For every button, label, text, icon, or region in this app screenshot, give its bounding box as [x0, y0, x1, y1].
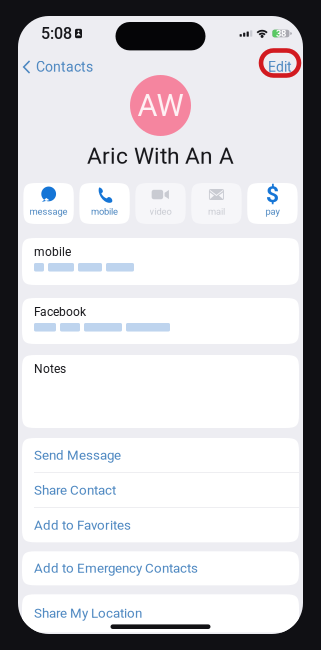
button[interactable]: Share Contact	[22, 473, 299, 507]
staticText: video	[149, 206, 171, 217]
staticText: 5:08	[41, 24, 72, 43]
button[interactable]: mobile	[22, 238, 299, 285]
staticText: Send Message	[34, 447, 121, 463]
button[interactable]: video	[135, 183, 186, 224]
staticText: Notes	[34, 362, 66, 376]
staticText: Aric With An A	[87, 143, 234, 169]
staticText: pay	[265, 206, 279, 217]
staticText: Edit	[268, 59, 292, 75]
staticText: mobile	[34, 245, 71, 259]
staticText: Share My Location	[34, 605, 142, 621]
button[interactable]: $	[247, 183, 298, 224]
button[interactable]: Facebook	[22, 298, 299, 344]
staticText: Add to Emergency Contacts	[34, 560, 198, 576]
staticText: $	[266, 181, 279, 208]
staticText: AW	[137, 87, 183, 123]
button[interactable]: message	[23, 183, 74, 224]
button[interactable]: mail	[191, 183, 242, 224]
button[interactable]: Share My Location	[22, 594, 299, 632]
button[interactable]: Add to Emergency Contacts	[22, 551, 299, 585]
button[interactable]: Edit	[261, 50, 299, 75]
button[interactable]: Contacts	[22, 50, 93, 76]
staticText: Add to Favorites	[34, 517, 131, 533]
button[interactable]: Send Message	[22, 438, 299, 472]
staticText: 38	[276, 28, 286, 39]
staticText: message	[30, 206, 68, 217]
staticText: mail	[208, 206, 225, 217]
button[interactable]: mobile	[79, 183, 130, 224]
staticText: Facebook	[34, 305, 86, 319]
staticText: Contacts	[36, 59, 93, 75]
button[interactable]: Add to Favorites	[22, 508, 299, 542]
staticText: Share Contact	[34, 482, 116, 498]
staticText: mobile	[91, 206, 118, 217]
